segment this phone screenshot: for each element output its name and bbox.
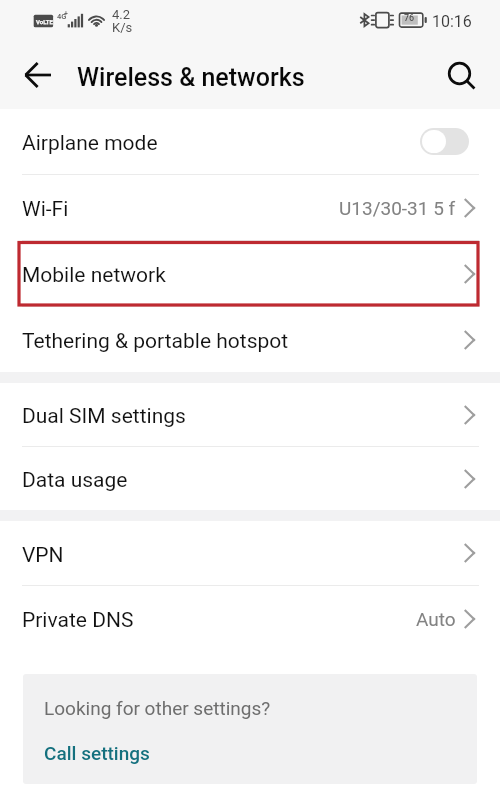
button[interactable]: Private DNS xyxy=(0,586,500,651)
staticText: 4.2 xyxy=(112,7,131,22)
button[interactable]: Back xyxy=(17,53,61,97)
staticText: Dual SIM settings xyxy=(22,404,186,429)
button[interactable]: Data usage xyxy=(0,447,500,510)
staticText: U13/30-31 5 f xyxy=(339,197,456,219)
staticText: K/s xyxy=(112,20,133,35)
staticText: Airplane mode xyxy=(22,131,158,156)
staticText: Wireless & networks xyxy=(77,63,305,92)
button[interactable]: Tethering & portable hotspot xyxy=(0,307,500,372)
staticText: Looking for other settings? xyxy=(44,697,271,719)
staticText: 10:16 xyxy=(432,12,472,31)
staticText: VPN xyxy=(22,543,64,568)
staticText: + xyxy=(64,10,68,18)
staticText: 76 xyxy=(404,13,415,24)
button[interactable]: Mobile network xyxy=(0,241,500,306)
button[interactable]: Wi-Fi xyxy=(0,175,500,240)
button[interactable]: Dual SIM settings xyxy=(0,383,500,446)
staticText: Tethering & portable hotspot xyxy=(22,329,289,354)
button[interactable]: Search xyxy=(442,53,486,97)
staticText: 4G xyxy=(57,12,67,21)
button[interactable]: Call settings xyxy=(44,742,150,764)
button[interactable]: VPN xyxy=(0,521,500,585)
staticText: Wi-Fi xyxy=(22,197,69,222)
staticText: Call settings xyxy=(44,742,150,764)
staticText: Mobile network xyxy=(22,263,166,288)
staticText: Auto xyxy=(416,608,456,630)
staticText: VoLTE xyxy=(36,18,53,25)
staticText: Private DNS xyxy=(22,608,134,633)
button[interactable]: Airplane mode xyxy=(0,109,500,174)
staticText: Data usage xyxy=(22,468,128,493)
